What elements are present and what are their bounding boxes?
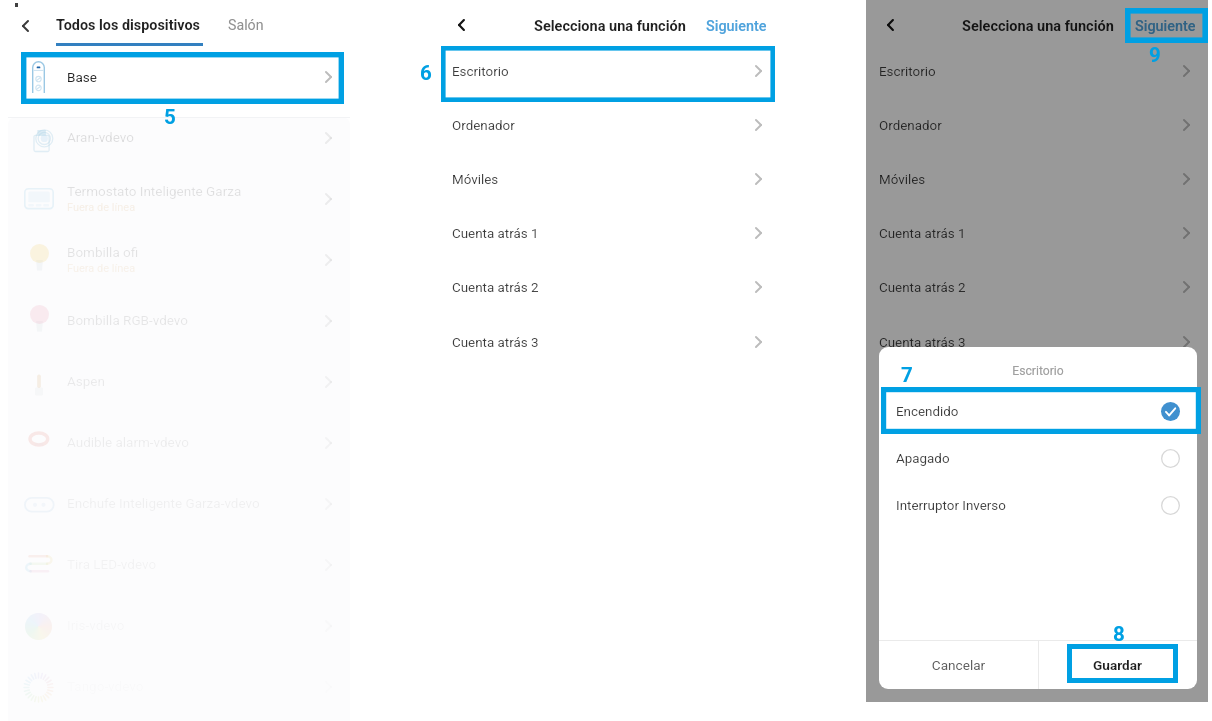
staticText: Selecciona una función (962, 18, 1114, 35)
staticText: Cancelar (879, 657, 1038, 673)
staticText: Móviles (452, 172, 499, 188)
staticText: Escritorio (879, 64, 936, 80)
staticText: Bombilla ofi (67, 244, 139, 260)
staticText: Termostato Inteligente Garza (67, 183, 242, 199)
staticText: Fuera de línea (67, 201, 136, 214)
staticText: Cuenta atrás 3 (879, 335, 966, 351)
staticText: Siguiente (706, 18, 767, 35)
staticText: Todos los dispositivos (56, 17, 201, 34)
button[interactable]: Siguiente (1128, 6, 1206, 44)
button[interactable]: Móviles (879, 154, 1189, 208)
staticText: Cuenta atrás 1 (879, 226, 966, 242)
staticText: Cuenta atrás 3 (452, 335, 539, 351)
staticText: 7 (901, 363, 913, 387)
staticText: Fuera de línea (67, 262, 136, 275)
button[interactable]: Todos los dispositivos (56, 12, 203, 50)
staticText: Cuenta atrás 2 (452, 280, 539, 296)
staticText: 6 (420, 61, 432, 85)
button[interactable]: Móviles (452, 154, 772, 208)
button[interactable]: Escritorio (879, 46, 1189, 100)
staticText: 9 (1149, 43, 1161, 67)
button[interactable]: Cuenta atrás 1 (452, 208, 772, 262)
staticText: Apagado (896, 451, 950, 467)
staticText: Móviles (879, 172, 926, 188)
staticText: 8 (1113, 622, 1125, 646)
staticText: Aspen (67, 373, 105, 389)
button[interactable]: Interruptor Inverso (879, 482, 1197, 529)
staticText: Cuenta atrás 2 (879, 280, 966, 296)
button[interactable]: Base (25, 56, 339, 99)
button[interactable]: Ordenador (452, 100, 772, 154)
button[interactable]: Apagado (879, 435, 1197, 482)
staticText: Enchufe Inteligente Garza-vdevo (67, 495, 260, 511)
button[interactable]: Cancelar (879, 641, 1038, 688)
button[interactable]: Atrás (11, 11, 41, 41)
button[interactable]: Atrás (447, 10, 477, 40)
staticText: Cuenta atrás 1 (452, 226, 539, 242)
staticText: Siguiente (1135, 18, 1196, 35)
button[interactable]: Escritorio (452, 46, 772, 100)
staticText: Audible alarm-vdevo (67, 434, 189, 450)
button[interactable]: Cuenta atrás 2 (879, 262, 1189, 316)
button[interactable]: Cuenta atrás 1 (879, 208, 1189, 262)
button[interactable]: Cuenta atrás 3 (879, 317, 1189, 371)
staticText: Salón (228, 17, 264, 34)
button[interactable]: Bombilla ofi (8, 233, 350, 287)
staticText: Bombilla RGB-vdevo (67, 312, 189, 328)
button[interactable]: Ordenador (879, 100, 1189, 154)
staticText: 5 (164, 105, 176, 129)
staticText: Encendido (896, 404, 959, 420)
button[interactable]: Bombilla RGB-vdevo (8, 294, 350, 348)
button[interactable]: Guardar (1038, 641, 1197, 688)
staticText: Selecciona una función (534, 18, 686, 35)
staticText: Aran-vdevo (67, 129, 134, 145)
button[interactable]: Encendido (879, 388, 1197, 435)
staticText: Guardar (1038, 657, 1197, 673)
staticText: Interruptor Inverso (896, 498, 1006, 514)
staticText: Escritorio (452, 64, 509, 80)
staticText: Escritorio (879, 364, 1197, 378)
button[interactable]: Termostato Inteligente Garza (8, 172, 350, 226)
button[interactable]: Salón (228, 12, 274, 40)
button[interactable]: Cuenta atrás 2 (452, 262, 772, 316)
button[interactable]: Atrás (876, 10, 906, 40)
staticText: Ordenador (452, 118, 515, 134)
button[interactable]: Siguiente (699, 10, 773, 42)
staticText: Ordenador (879, 118, 942, 134)
button[interactable]: Cuenta atrás 3 (452, 317, 772, 371)
staticText: Base (67, 69, 97, 85)
button[interactable]: Aran-vdevo (8, 111, 350, 165)
